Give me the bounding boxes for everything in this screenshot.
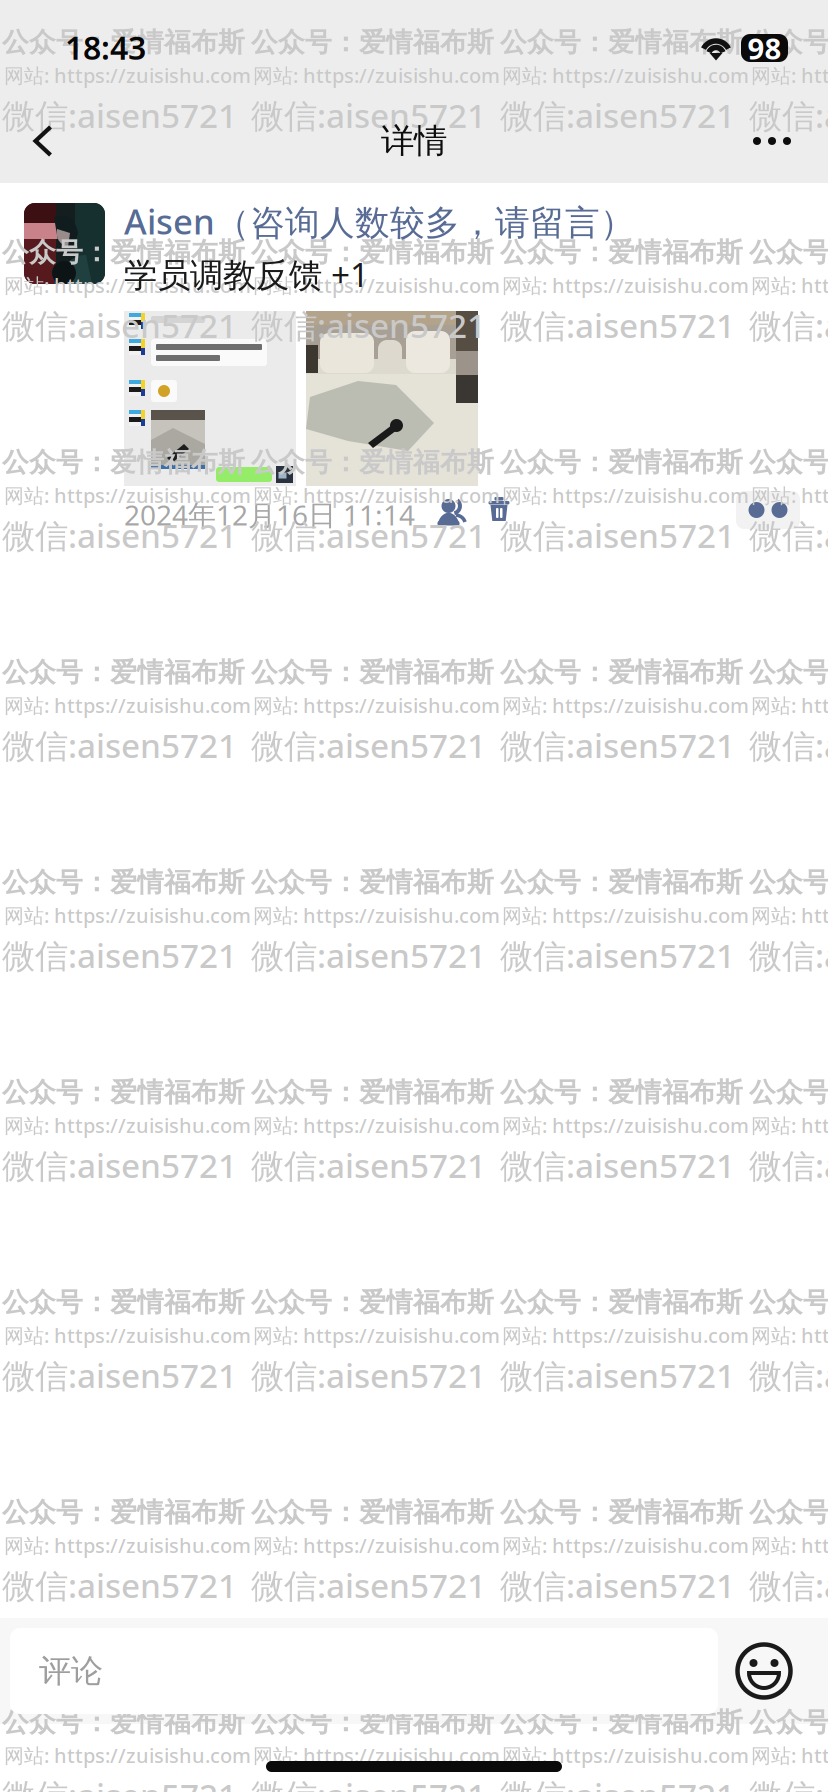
staticText: 微信:aisen5721 <box>749 1773 828 1792</box>
staticText: 公众号：爱情福布斯 <box>251 866 494 899</box>
button[interactable]: Visible to <box>429 492 475 532</box>
staticText: 微信:aisen5721 <box>251 1143 486 1187</box>
staticText: 网站: https://zuisishu.com <box>751 1112 828 1139</box>
staticText: 公众号：爱情福布斯 <box>749 656 828 689</box>
staticText: 公众号：爱情福布斯 <box>2 26 245 59</box>
button[interactable]: Delete <box>477 490 521 530</box>
staticText: 公众号：爱情福布斯 <box>251 236 494 269</box>
staticText: 网站: https://zuisishu.com <box>253 692 500 719</box>
staticText: 网站: https://zuisishu.com <box>4 62 251 89</box>
staticText: 网站: https://zuisishu.com <box>751 62 828 89</box>
staticText: 学员调教反馈 +1 <box>124 252 369 296</box>
staticText: 网站: https://zuisishu.com <box>502 1532 749 1559</box>
staticText: 公众号：爱情福布斯 <box>251 656 494 689</box>
staticText: 微信:aisen5721 <box>500 1353 735 1397</box>
button[interactable]: More <box>0 104 828 178</box>
staticText: 公众号：爱情福布斯 <box>2 236 245 269</box>
staticText: 公众号：爱情福布斯 <box>2 1286 245 1319</box>
staticText: 网站: https://zuisishu.com <box>502 902 749 929</box>
staticText: 18:43 <box>65 26 146 68</box>
staticText: 微信:aisen5721 <box>251 1563 486 1607</box>
staticText: 微信:aisen5721 <box>251 303 486 347</box>
staticText: 公众号：爱情福布斯 <box>2 656 245 689</box>
staticText: 微信:aisen5721 <box>2 1773 237 1792</box>
staticText: 公众号：爱情福布斯 <box>251 1706 494 1739</box>
staticText: 公众号：爱情福布斯 <box>749 866 828 899</box>
staticText: 网站: https://zuisishu.com <box>502 692 749 719</box>
staticText: 网站: https://zuisishu.com <box>253 62 500 89</box>
staticText: 网站: https://zuisishu.com <box>751 482 828 509</box>
staticText: 网站: https://zuisishu.com <box>253 1532 500 1559</box>
staticText: 网站: https://zuisishu.com <box>4 1742 251 1769</box>
staticText: 网站: https://zuisishu.com <box>502 1322 749 1349</box>
staticText: 公众号：爱情福布斯 <box>251 1286 494 1319</box>
staticText: 微信:aisen5721 <box>500 93 735 137</box>
button[interactable]: Aisen（咨询人数较多，请留言） <box>124 198 635 244</box>
staticText: 网站: https://zuisishu.com <box>253 1742 500 1769</box>
staticText: 微信:aisen5721 <box>2 723 237 767</box>
staticText: 网站: https://zuisishu.com <box>4 1532 251 1559</box>
staticText: 微信:aisen5721 <box>500 1773 735 1792</box>
staticText: 微信:aisen5721 <box>500 1563 735 1607</box>
staticText: 微信:aisen5721 <box>749 1353 828 1397</box>
staticText: 微信:aisen5721 <box>2 1353 237 1397</box>
staticText: 公众号：爱情福布斯 <box>500 1286 743 1319</box>
staticText: 公众号：爱情福布斯 <box>2 1076 245 1109</box>
staticText: 微信:aisen5721 <box>251 1773 486 1792</box>
staticText: 公众号：爱情福布斯 <box>2 1496 245 1529</box>
staticText: 网站: https://zuisishu.com <box>4 1322 251 1349</box>
staticText: 微信:aisen5721 <box>500 933 735 977</box>
staticText: Aisen（咨询人数较多，请留言） <box>124 198 635 244</box>
staticText: 微信:aisen5721 <box>251 513 486 557</box>
staticText: 微信:aisen5721 <box>251 723 486 767</box>
staticText: 网站: https://zuisishu.com <box>4 692 251 719</box>
button[interactable]: Aisen profile photo <box>24 203 105 284</box>
staticText: 微信:aisen5721 <box>749 513 828 557</box>
button[interactable]: Like or comment <box>736 491 800 529</box>
staticText: 微信:aisen5721 <box>2 1143 237 1187</box>
staticText: 网站: https://zuisishu.com <box>4 482 251 509</box>
staticText: 微信:aisen5721 <box>251 93 486 137</box>
staticText: 公众号：爱情福布斯 <box>500 1496 743 1529</box>
button[interactable]: Photo 1 <box>124 311 296 486</box>
staticText: 网站: https://zuisishu.com <box>253 902 500 929</box>
staticText: 网站: https://zuisishu.com <box>751 1742 828 1769</box>
staticText: 公众号：爱情福布斯 <box>500 236 743 269</box>
staticText: 微信:aisen5721 <box>500 303 735 347</box>
staticText: 公众号：爱情福布斯 <box>2 866 245 899</box>
staticText: 网站: https://zuisishu.com <box>502 1742 749 1769</box>
button[interactable]: Photo 2 <box>306 311 478 486</box>
staticText: 公众号：爱情福布斯 <box>2 446 245 479</box>
staticText: 公众号：爱情福布斯 <box>2 1706 245 1739</box>
button[interactable]: Emoji keyboard <box>718 1628 810 1714</box>
staticText: 微信:aisen5721 <box>2 93 237 137</box>
staticText: 公众号：爱情福布斯 <box>749 1706 828 1739</box>
staticText: 微信:aisen5721 <box>500 1143 735 1187</box>
staticText: 微信:aisen5721 <box>749 93 828 137</box>
staticText: 微信:aisen5721 <box>500 723 735 767</box>
staticText: 公众号：爱情福布斯 <box>500 1706 743 1739</box>
button[interactable]: Back <box>0 104 86 178</box>
staticText: 网站: https://zuisishu.com <box>502 62 749 89</box>
staticText: 公众号：爱情福布斯 <box>251 1496 494 1529</box>
staticText: 2024年12月16日 11:14 <box>124 496 415 533</box>
staticText: 公众号：爱情福布斯 <box>749 236 828 269</box>
staticText: 公众号：爱情福布斯 <box>500 656 743 689</box>
staticText: 网站: https://zuisishu.com <box>253 1112 500 1139</box>
staticText: 网站: https://zuisishu.com <box>502 1112 749 1139</box>
staticText: 网站: https://zuisishu.com <box>4 272 251 299</box>
staticText: 网站: https://zuisishu.com <box>4 902 251 929</box>
button[interactable]: 评论 <box>10 1628 718 1714</box>
staticText: 公众号：爱情福布斯 <box>500 446 743 479</box>
staticText: 网站: https://zuisishu.com <box>253 272 500 299</box>
staticText: 网站: https://zuisishu.com <box>4 1112 251 1139</box>
staticText: 公众号：爱情福布斯 <box>749 446 828 479</box>
staticText: 微信:aisen5721 <box>749 303 828 347</box>
staticText: 微信:aisen5721 <box>2 1563 237 1607</box>
staticText: 微信:aisen5721 <box>2 303 237 347</box>
staticText: 网站: https://zuisishu.com <box>751 902 828 929</box>
staticText: 网站: https://zuisishu.com <box>751 1532 828 1559</box>
staticText: 微信:aisen5721 <box>749 723 828 767</box>
staticText: 网站: https://zuisishu.com <box>502 272 749 299</box>
staticText: 微信:aisen5721 <box>500 513 735 557</box>
